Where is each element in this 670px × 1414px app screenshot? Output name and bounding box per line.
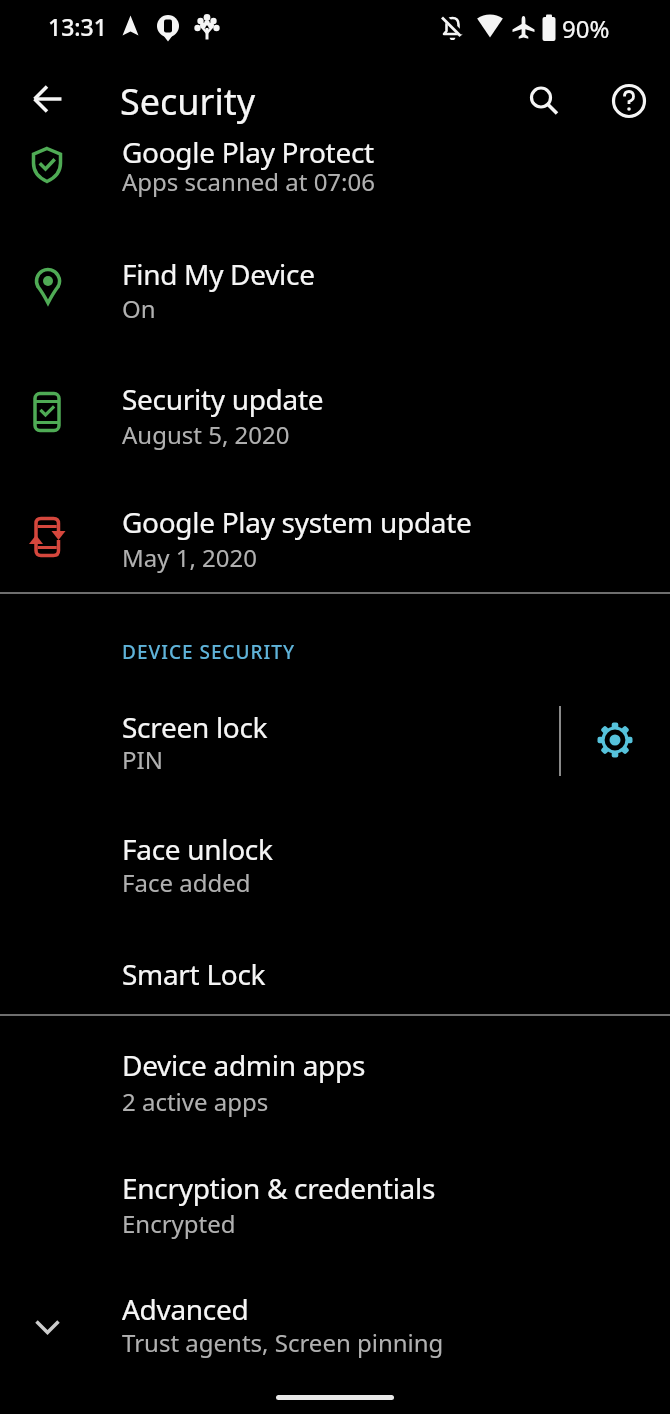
button[interactable] bbox=[0, 1280, 670, 1390]
button[interactable] bbox=[0, 245, 670, 365]
staticText: DEVICE SECURITY bbox=[122, 639, 296, 665]
staticText: Encrypted bbox=[122, 1207, 236, 1240]
staticText: Trust agents, Screen pinning bbox=[122, 1326, 444, 1359]
staticText: Face unlock bbox=[122, 830, 273, 868]
button[interactable] bbox=[0, 495, 670, 615]
staticText: Face added bbox=[122, 866, 251, 899]
staticText: Google Play Protect bbox=[122, 133, 374, 171]
button[interactable] bbox=[0, 820, 670, 930]
staticText: May 1, 2020 bbox=[122, 541, 258, 574]
staticText: Screen lock bbox=[122, 708, 268, 746]
button[interactable] bbox=[520, 77, 568, 125]
staticText: Security bbox=[120, 77, 256, 126]
staticText: Google Play system update bbox=[122, 503, 472, 541]
staticText: Find My Device bbox=[122, 255, 315, 293]
button[interactable] bbox=[0, 695, 670, 800]
button[interactable] bbox=[0, 135, 670, 245]
staticText: PIN bbox=[122, 743, 163, 776]
button[interactable] bbox=[0, 1160, 670, 1270]
staticText: August 5, 2020 bbox=[122, 418, 290, 451]
staticText: Encryption & credentials bbox=[122, 1169, 436, 1207]
staticText: Security update bbox=[122, 380, 324, 418]
button[interactable] bbox=[0, 935, 670, 1025]
staticText: On bbox=[122, 292, 156, 325]
staticText: Apps scanned at 07:06 bbox=[122, 165, 375, 198]
button[interactable] bbox=[24, 75, 72, 123]
staticText: 90% bbox=[562, 12, 610, 45]
staticText: Advanced bbox=[122, 1290, 249, 1328]
button[interactable] bbox=[0, 1035, 670, 1145]
button[interactable] bbox=[605, 77, 653, 125]
staticText: 2 active apps bbox=[122, 1085, 269, 1118]
button[interactable] bbox=[0, 370, 670, 490]
staticText: Device admin apps bbox=[122, 1046, 366, 1084]
staticText: Smart Lock bbox=[122, 955, 266, 993]
button[interactable] bbox=[590, 715, 640, 765]
staticText: 13:31 bbox=[48, 11, 107, 42]
